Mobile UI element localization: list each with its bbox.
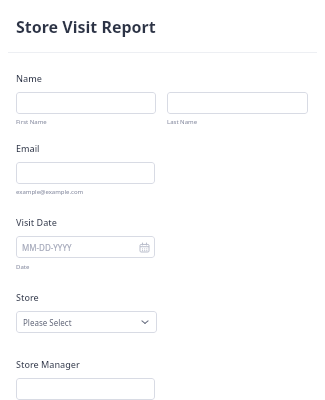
button[interactable] [16,378,155,400]
button[interactable] [16,92,156,114]
staticText: First Name [16,118,47,126]
button[interactable]: Please Select [16,311,157,333]
staticText: Store [16,291,39,303]
button[interactable]: MM-DD-YYYY [16,236,155,258]
staticText: Name [16,72,42,84]
staticText: Store Visit Report [16,16,156,38]
button[interactable] [167,92,308,114]
staticText: Store Manager [16,358,80,370]
staticText: Email [16,142,40,154]
staticText: Date [16,263,30,271]
staticText: Please Select [23,317,141,328]
staticText: Visit Date [16,216,57,228]
staticText: Last Name [167,118,198,126]
other: Open calendar [140,243,149,252]
staticText: example@example.com [16,188,84,196]
button[interactable] [16,162,155,184]
staticText: MM-DD-YYYY [22,242,140,253]
